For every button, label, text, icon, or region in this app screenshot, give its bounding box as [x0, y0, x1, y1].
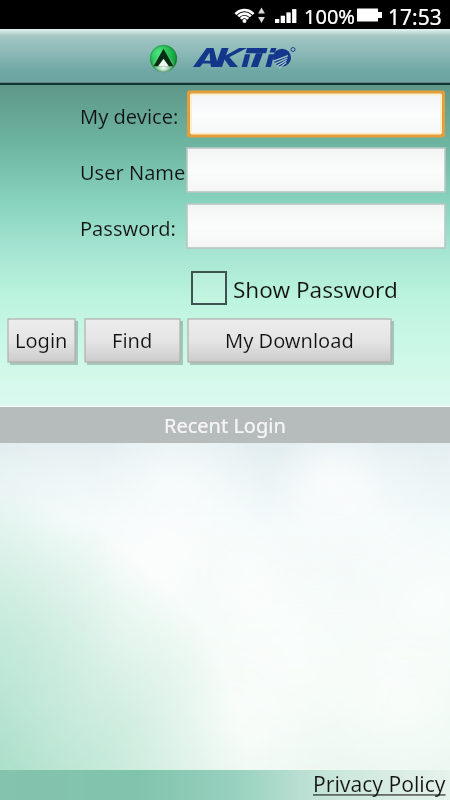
- button[interactable]: [187, 146, 445, 194]
- button[interactable]: [187, 90, 445, 138]
- button[interactable]: Privacy Policy: [313, 770, 446, 799]
- other: AKiTiO: [193, 46, 294, 70]
- staticText: 100%: [304, 3, 355, 30]
- staticText: Find: [112, 327, 153, 354]
- button[interactable]: Recent Login: [0, 407, 450, 443]
- staticText: User Name:: [80, 159, 191, 186]
- staticText: Login: [15, 327, 68, 354]
- button[interactable]: Find: [85, 319, 182, 364]
- staticText: Password:: [80, 215, 176, 242]
- button[interactable]: Show Password: [191, 271, 398, 305]
- staticText: 17:53: [388, 3, 442, 32]
- staticText: Show Password: [233, 274, 398, 305]
- other: AKiTiO logo: [150, 45, 177, 72]
- staticText: My Download: [225, 327, 354, 354]
- staticText: My device:: [80, 103, 179, 130]
- staticText: Recent Login: [164, 412, 286, 439]
- button[interactable]: [187, 202, 445, 250]
- button[interactable]: My Download: [188, 319, 393, 364]
- staticText: Privacy Policy: [313, 770, 446, 799]
- button[interactable]: Login: [8, 319, 77, 364]
